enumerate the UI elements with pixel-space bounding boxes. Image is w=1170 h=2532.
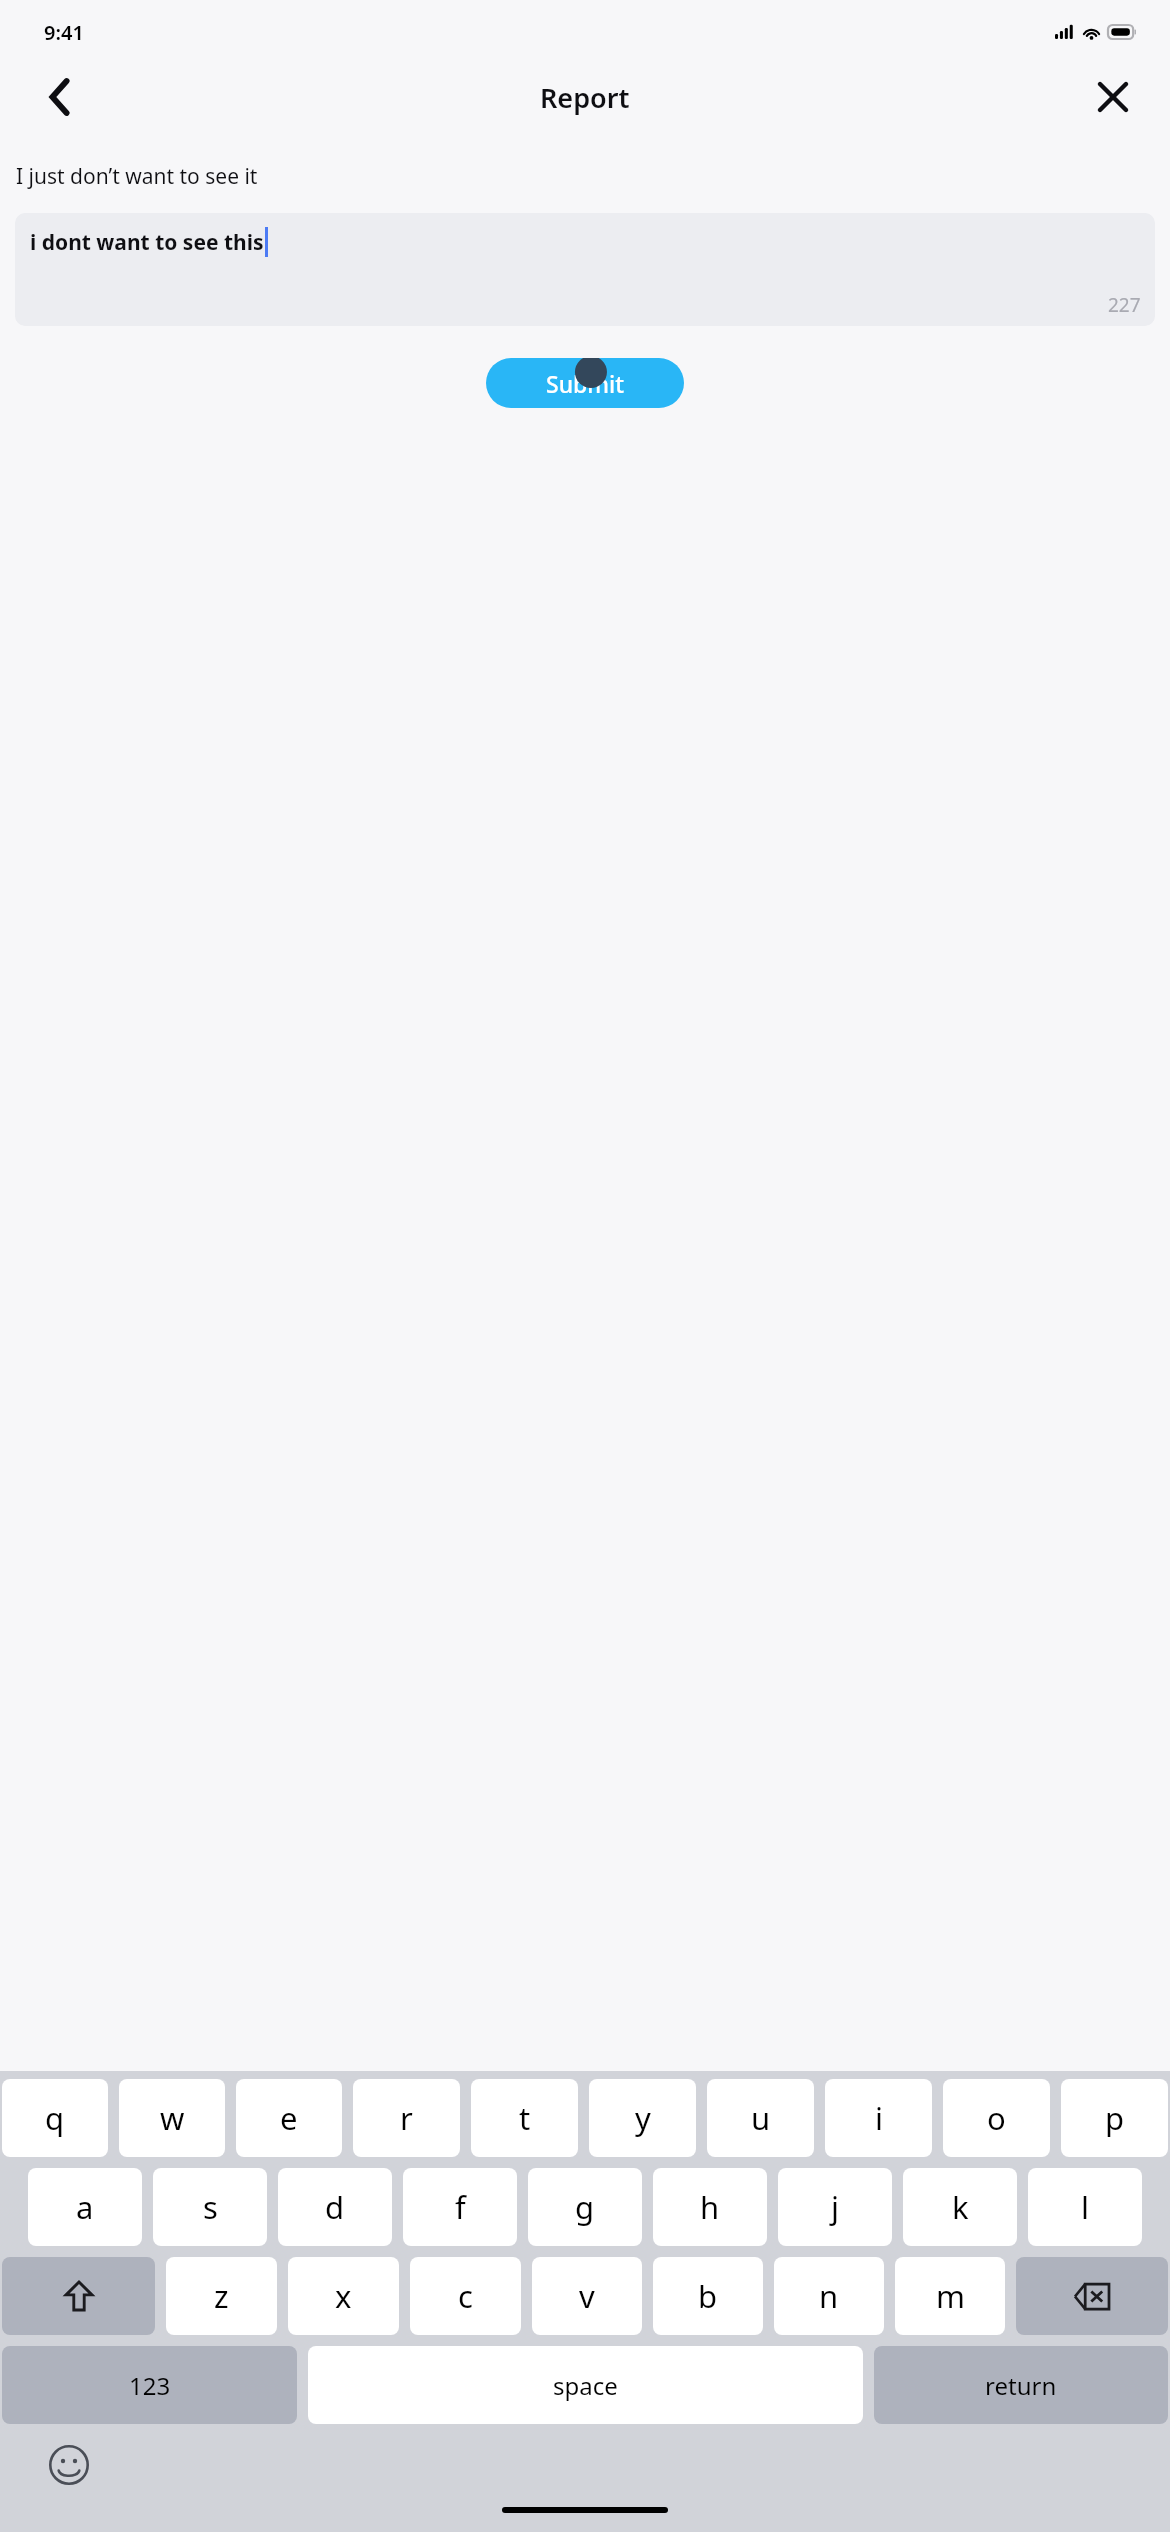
- button[interactable]: h: [653, 2168, 767, 2246]
- button[interactable]: space: [308, 2346, 863, 2424]
- staticText: o: [987, 2097, 1006, 2139]
- button[interactable]: t: [471, 2079, 578, 2157]
- staticText: I just don’t want to see it: [16, 162, 258, 191]
- button[interactable]: i dont want to see this: [15, 213, 1155, 326]
- staticText: space: [553, 2369, 618, 2402]
- staticText: h: [700, 2186, 720, 2228]
- staticText: i dont want to see this: [30, 228, 264, 257]
- button[interactable]: Emoji: [46, 2442, 92, 2488]
- staticText: Submit: [546, 368, 625, 399]
- staticText: b: [698, 2275, 718, 2317]
- staticText: g: [575, 2186, 595, 2228]
- button[interactable]: o: [943, 2079, 1050, 2157]
- button[interactable]: p: [1061, 2079, 1168, 2157]
- button[interactable]: y: [589, 2079, 696, 2157]
- button[interactable]: r: [353, 2079, 460, 2157]
- staticText: u: [751, 2097, 771, 2139]
- staticText: p: [1105, 2097, 1125, 2139]
- button[interactable]: i: [825, 2079, 932, 2157]
- button[interactable]: v: [532, 2257, 642, 2335]
- staticText: k: [952, 2186, 969, 2228]
- button[interactable]: d: [278, 2168, 392, 2246]
- staticText: l: [1081, 2186, 1089, 2228]
- staticText: Report: [540, 79, 630, 116]
- staticText: return: [985, 2369, 1057, 2402]
- button[interactable]: z: [166, 2257, 277, 2335]
- button[interactable]: Backspace: [1016, 2257, 1168, 2335]
- button[interactable]: j: [778, 2168, 892, 2246]
- button[interactable]: a: [28, 2168, 142, 2246]
- staticText: n: [819, 2275, 839, 2317]
- button[interactable]: f: [403, 2168, 517, 2246]
- button[interactable]: g: [528, 2168, 642, 2246]
- staticText: i: [875, 2097, 883, 2139]
- button[interactable]: s: [153, 2168, 267, 2246]
- button[interactable]: return: [874, 2346, 1168, 2424]
- button[interactable]: x: [288, 2257, 399, 2335]
- staticText: j: [831, 2186, 839, 2228]
- staticText: 123: [129, 2369, 171, 2402]
- staticText: c: [458, 2275, 473, 2317]
- button[interactable]: k: [903, 2168, 1017, 2246]
- button[interactable]: Submit: [486, 358, 684, 408]
- staticText: z: [214, 2275, 229, 2317]
- staticText: x: [335, 2275, 352, 2317]
- button[interactable]: w: [119, 2079, 225, 2157]
- staticText: d: [325, 2186, 345, 2228]
- button[interactable]: q: [2, 2079, 108, 2157]
- button[interactable]: n: [774, 2257, 884, 2335]
- staticText: f: [455, 2186, 466, 2228]
- staticText: q: [45, 2097, 65, 2139]
- staticText: v: [579, 2275, 595, 2317]
- staticText: w: [160, 2097, 185, 2139]
- button[interactable]: l: [1028, 2168, 1142, 2246]
- staticText: m: [936, 2275, 965, 2317]
- button[interactable]: u: [707, 2079, 814, 2157]
- button[interactable]: e: [236, 2079, 342, 2157]
- staticText: a: [76, 2186, 94, 2228]
- staticText: 9:41: [44, 19, 84, 46]
- button[interactable]: Shift: [2, 2257, 155, 2335]
- button[interactable]: Back: [30, 68, 88, 126]
- staticText: t: [519, 2097, 531, 2139]
- staticText: y: [635, 2097, 651, 2139]
- button[interactable]: c: [410, 2257, 521, 2335]
- button[interactable]: 123: [2, 2346, 297, 2424]
- button[interactable]: m: [895, 2257, 1005, 2335]
- staticText: s: [203, 2186, 218, 2228]
- staticText: e: [280, 2097, 298, 2139]
- button[interactable]: b: [653, 2257, 763, 2335]
- staticText: 227: [1108, 292, 1141, 318]
- button[interactable]: Close: [1084, 68, 1142, 126]
- staticText: r: [400, 2097, 413, 2139]
